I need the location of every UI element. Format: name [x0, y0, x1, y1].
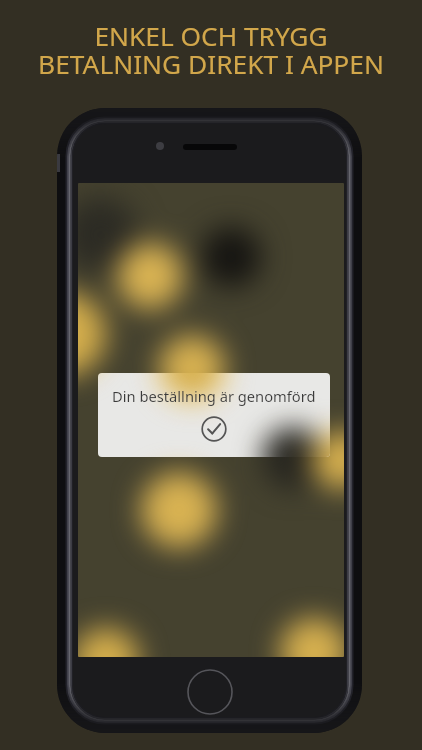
other: Home [187, 669, 233, 715]
button[interactable]: Din beställning är genomförd [98, 373, 330, 457]
other: Order confirmed [201, 416, 227, 442]
staticText: ENKEL OCH TRYGG [94, 18, 328, 54]
staticText: BETALNING DIREKT I APPEN [38, 46, 384, 82]
staticText: Din beställning är genomförd [112, 386, 316, 406]
